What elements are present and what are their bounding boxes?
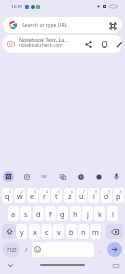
staticText: 6 xyxy=(71,189,74,194)
button[interactable]: Copy xyxy=(99,39,110,50)
staticText: v xyxy=(57,227,61,237)
button[interactable]: Stickers xyxy=(93,171,104,182)
staticText: s xyxy=(24,209,28,219)
button[interactable]: Google Lens xyxy=(108,21,117,30)
button[interactable]: l xyxy=(107,206,118,221)
staticText: q xyxy=(5,191,10,201)
button[interactable]: Edit xyxy=(114,39,122,50)
button[interactable]: j xyxy=(82,206,93,221)
staticText: ?123 xyxy=(7,247,17,253)
button[interactable]: f xyxy=(45,206,56,221)
staticText: x xyxy=(33,227,37,237)
button[interactable]: t xyxy=(51,188,62,203)
button[interactable]: h xyxy=(70,206,81,221)
staticText: f xyxy=(49,209,52,219)
button[interactable]: u xyxy=(76,188,87,203)
staticText: w xyxy=(17,191,23,201)
staticText: 3 xyxy=(34,189,37,194)
staticText: 9 xyxy=(108,189,111,194)
button[interactable]: a xyxy=(8,206,19,221)
button[interactable]: z xyxy=(64,188,75,203)
button[interactable]: p xyxy=(113,188,124,203)
button[interactable]: d xyxy=(33,206,44,221)
button[interactable]: w xyxy=(14,188,25,203)
button[interactable]: c xyxy=(41,224,52,239)
staticText: 7 xyxy=(83,189,86,194)
button[interactable]: Notebook Test, La... xyxy=(3,35,122,53)
staticText: d xyxy=(36,209,41,219)
staticText: b xyxy=(69,227,74,237)
button[interactable]: Shift xyxy=(2,224,16,239)
staticText: 5 xyxy=(58,189,61,194)
button[interactable]: Backspace xyxy=(106,224,123,239)
button[interactable]: i xyxy=(88,188,99,203)
button[interactable]: x xyxy=(29,224,40,239)
staticText: o xyxy=(104,191,109,201)
staticText: z xyxy=(68,191,72,201)
button[interactable]: Clipboard xyxy=(21,171,32,182)
button[interactable]: Emoji xyxy=(32,242,43,257)
staticText: n xyxy=(81,227,86,237)
staticText: u xyxy=(79,191,84,201)
staticText: p xyxy=(116,191,121,201)
staticText: c xyxy=(45,227,49,237)
button[interactable]: k xyxy=(94,206,105,221)
button[interactable]: / xyxy=(21,242,31,257)
staticText: m xyxy=(92,227,99,237)
button[interactable]: g xyxy=(57,206,68,221)
button[interactable]: Switch keyboard xyxy=(110,260,121,271)
button[interactable]: Voice input xyxy=(111,171,122,182)
staticText: GIF xyxy=(41,174,48,179)
button[interactable]: r xyxy=(39,188,50,203)
staticText: e xyxy=(30,191,35,201)
button[interactable]: q xyxy=(2,188,13,203)
button[interactable]: o xyxy=(101,188,112,203)
staticText: 0 xyxy=(120,189,123,194)
staticText: notebookcheck.com xyxy=(19,42,63,48)
button[interactable]: b xyxy=(66,224,77,239)
staticText: k xyxy=(98,209,102,219)
button[interactable]: n xyxy=(78,224,89,239)
staticText: y xyxy=(20,227,24,237)
staticText: 12:19 xyxy=(11,4,22,10)
button[interactable]: . xyxy=(95,242,105,257)
staticText: j xyxy=(87,209,89,219)
button[interactable]: y xyxy=(16,224,27,239)
button[interactable]: v xyxy=(53,224,64,239)
staticText: . xyxy=(99,246,101,254)
button[interactable]: Translate xyxy=(57,171,68,182)
button[interactable]: Hide keyboard xyxy=(5,259,16,271)
staticText: i xyxy=(93,191,95,201)
staticText: Notebook Test, La... xyxy=(19,36,69,43)
staticText: t xyxy=(55,191,58,201)
staticText: Search or type URL xyxy=(22,22,68,29)
button[interactable]: Settings xyxy=(75,171,86,182)
staticText: 1 xyxy=(9,189,12,194)
staticText: l xyxy=(112,209,114,219)
button[interactable]: Go xyxy=(107,242,122,257)
button[interactable]: Search or type URL xyxy=(3,17,122,33)
button[interactable]: ?123 xyxy=(3,242,20,257)
button[interactable]: e xyxy=(27,188,38,203)
button[interactable]: m xyxy=(90,224,101,239)
staticText: g xyxy=(60,209,65,219)
button[interactable]: s xyxy=(20,206,31,221)
button[interactable]: GIF xyxy=(39,171,50,182)
button[interactable]: Gboard xyxy=(3,171,14,182)
staticText: / xyxy=(25,246,28,254)
staticText: r xyxy=(43,191,46,201)
staticText: h xyxy=(73,209,78,219)
staticText: 4 xyxy=(46,189,49,194)
staticText: a xyxy=(11,209,16,219)
button[interactable]: Share xyxy=(83,39,94,50)
staticText: 2 xyxy=(21,189,24,194)
staticText: 8 xyxy=(95,189,98,194)
